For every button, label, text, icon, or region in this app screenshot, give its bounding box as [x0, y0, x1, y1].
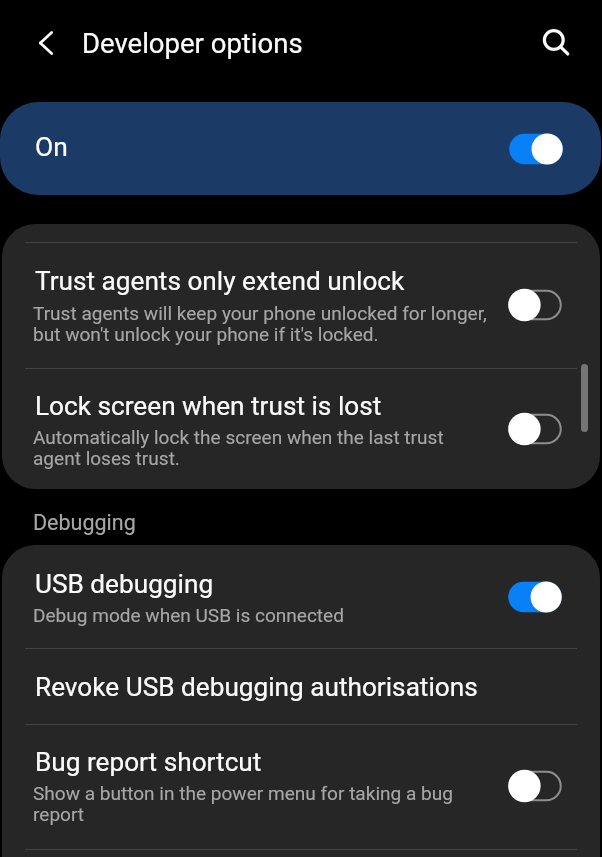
button[interactable]: USB debugging: [2, 545, 600, 648]
staticText: Trust agents will keep your phone unlock…: [33, 302, 487, 345]
staticText: Show a button in the power menu for taki…: [33, 782, 453, 825]
staticText: Revoke USB debugging authorisations: [35, 672, 478, 703]
staticText: Debugging: [33, 510, 136, 535]
staticText: Automatically lock the screen when the l…: [33, 426, 444, 469]
button[interactable]: Lock screen when trust is lost: [2, 368, 600, 489]
staticText: Debug mode when USB is connected: [33, 604, 344, 626]
staticText: Bug report shortcut: [35, 747, 262, 778]
button[interactable]: Bug report shortcut: [2, 724, 600, 848]
button[interactable]: On: [0, 102, 601, 195]
button[interactable]: Back: [22, 20, 68, 66]
staticText: Developer options: [82, 27, 303, 59]
staticText: USB debugging: [35, 569, 214, 600]
button[interactable]: Trust agents only extend unlock: [2, 242, 600, 368]
staticText: Lock screen when trust is lost: [35, 391, 382, 422]
staticText: On: [35, 132, 68, 163]
staticText: Trust agents only extend unlock: [35, 266, 405, 297]
button[interactable]: Search: [532, 21, 576, 65]
button[interactable]: Revoke USB debugging authorisations: [2, 648, 600, 725]
